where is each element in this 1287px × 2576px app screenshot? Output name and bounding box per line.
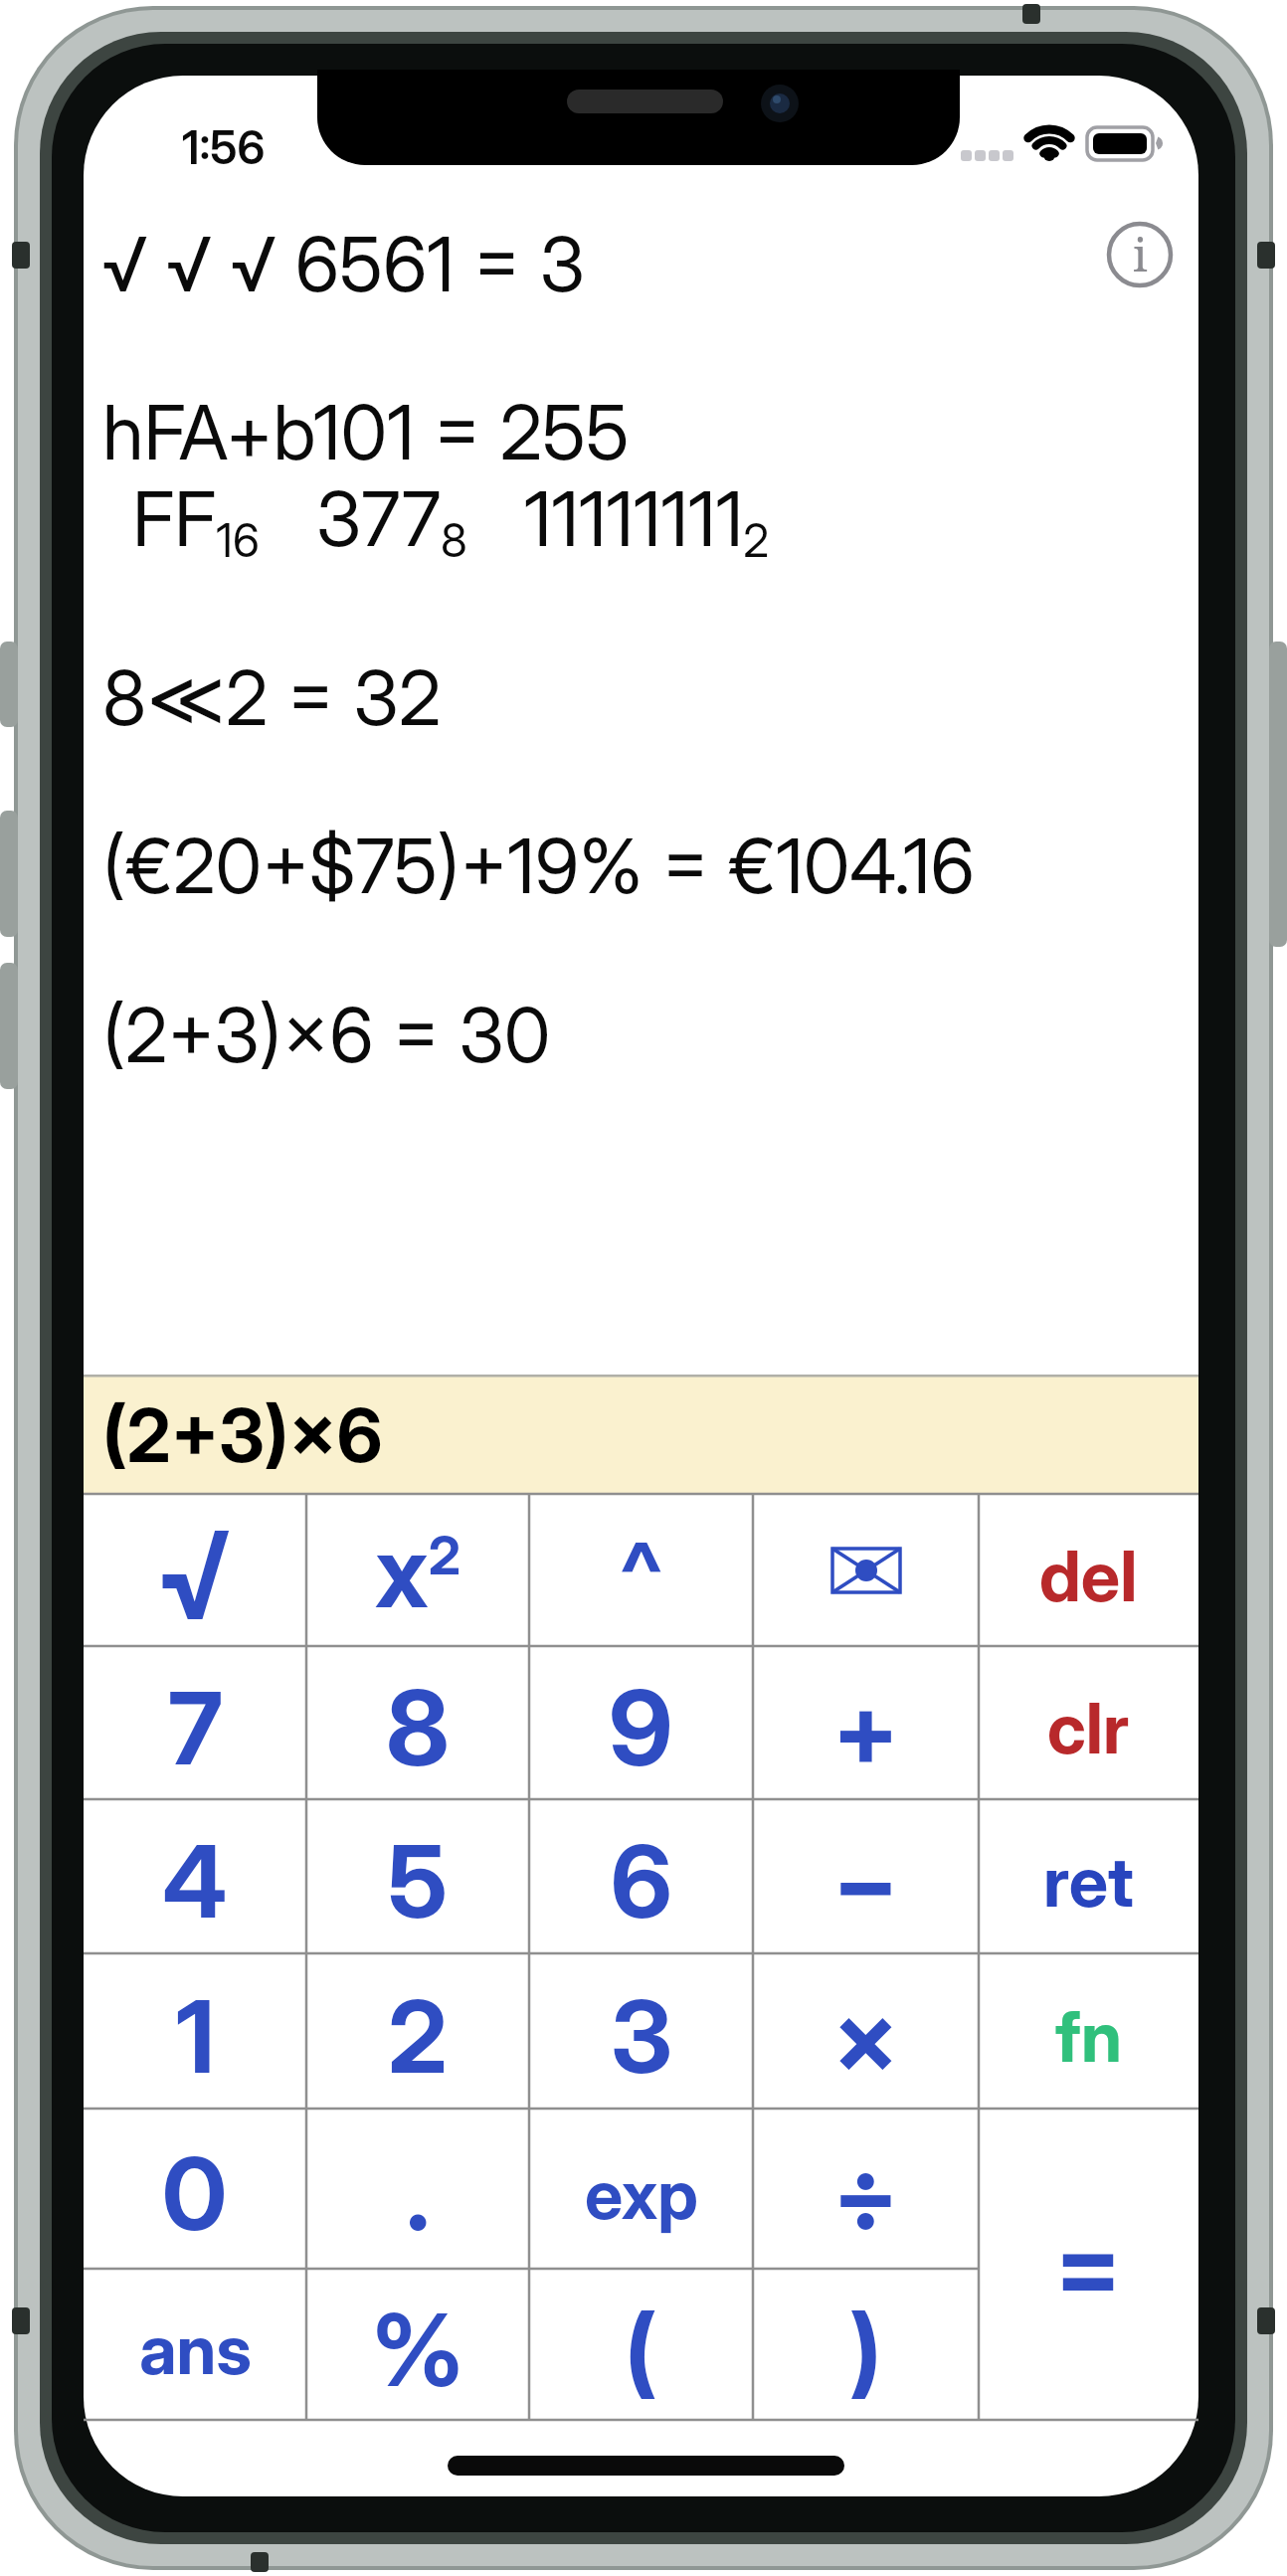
staticText: exp xyxy=(585,2153,698,2235)
staticText: 9 xyxy=(609,1665,673,1790)
button[interactable]: 7 xyxy=(84,1646,306,1799)
button[interactable] xyxy=(753,1495,979,1646)
button[interactable]: 8 xyxy=(306,1646,529,1799)
button[interactable]: ret xyxy=(979,1799,1198,1953)
staticText: 8≪2 = 32 xyxy=(102,651,442,743)
button[interactable]: − xyxy=(753,1799,979,1953)
staticText: 1 xyxy=(176,1976,215,2097)
button[interactable]: 6 xyxy=(529,1799,753,1953)
staticText: ret xyxy=(1043,1839,1134,1924)
staticText: x2 xyxy=(375,1511,461,1631)
staticText: + xyxy=(832,1667,899,1789)
staticText: clr xyxy=(1047,1686,1130,1770)
staticText: √ √ √ 6561 = 3 xyxy=(102,218,586,309)
button[interactable]: exp xyxy=(529,2109,753,2269)
button[interactable]: = xyxy=(979,2109,1198,2420)
button[interactable]: i xyxy=(1110,223,1170,282)
staticText: 6 xyxy=(611,1821,672,1941)
staticText: 4 xyxy=(162,1821,228,1941)
button[interactable]: del xyxy=(979,1495,1198,1646)
staticText: del xyxy=(1039,1534,1138,1618)
staticText: 3 xyxy=(611,1976,672,2097)
staticText: fn xyxy=(1055,1994,1122,2079)
staticText: (2+3)×6 = 30 xyxy=(102,989,551,1080)
staticText: − xyxy=(832,1820,899,1942)
staticText: 8 xyxy=(386,1665,450,1790)
button[interactable]: ans xyxy=(84,2269,306,2420)
staticText: 1:56 xyxy=(182,119,266,171)
staticText: = xyxy=(1054,2202,1123,2327)
staticText: (€20+$75)+19% = €104.16 xyxy=(102,820,975,911)
button[interactable]: 9 xyxy=(529,1646,753,1799)
button[interactable]: ) xyxy=(753,2269,979,2420)
button[interactable]: √ xyxy=(84,1495,306,1646)
button[interactable]: 2 xyxy=(306,1953,529,2109)
button[interactable]: x2 xyxy=(306,1495,529,1646)
button[interactable]: × xyxy=(753,1953,979,2109)
button[interactable]: 3 xyxy=(529,1953,753,2109)
button[interactable]: ^ xyxy=(529,1495,753,1646)
staticText: i xyxy=(1133,223,1148,282)
button[interactable]: 5 xyxy=(306,1799,529,1953)
staticText: ) xyxy=(849,2291,882,2409)
staticText: 0 xyxy=(162,2133,228,2254)
staticText: ( xyxy=(625,2291,657,2409)
button[interactable]: clr xyxy=(979,1646,1198,1799)
staticText: √ xyxy=(156,1502,235,1649)
button[interactable]: ( xyxy=(529,2269,753,2420)
staticText: × xyxy=(832,1975,899,2098)
button[interactable]: 1 xyxy=(84,1953,306,2109)
button[interactable]: ÷ xyxy=(753,2109,979,2269)
staticText: (2+3)×6 xyxy=(102,1390,383,1480)
staticText: 5 xyxy=(388,1821,448,1941)
button[interactable]: + xyxy=(753,1646,979,1799)
button[interactable]: % xyxy=(306,2269,529,2420)
staticText: 7 xyxy=(168,1668,223,1788)
staticText: ^ xyxy=(620,1519,663,1632)
staticText: hFA+b101 = 255 xyxy=(102,386,630,477)
staticText: 2 xyxy=(388,1976,448,2097)
button[interactable]: 4 xyxy=(84,1799,306,1953)
staticText: % xyxy=(371,2290,464,2410)
staticText: ÷ xyxy=(832,2132,899,2255)
staticText: FF16 3778 111111112 xyxy=(132,472,769,568)
button[interactable]: fn xyxy=(979,1953,1198,2109)
staticText: ans xyxy=(139,2308,252,2390)
staticText: . xyxy=(406,2133,431,2254)
button[interactable]: . xyxy=(306,2109,529,2269)
button[interactable]: 0 xyxy=(84,2109,306,2269)
